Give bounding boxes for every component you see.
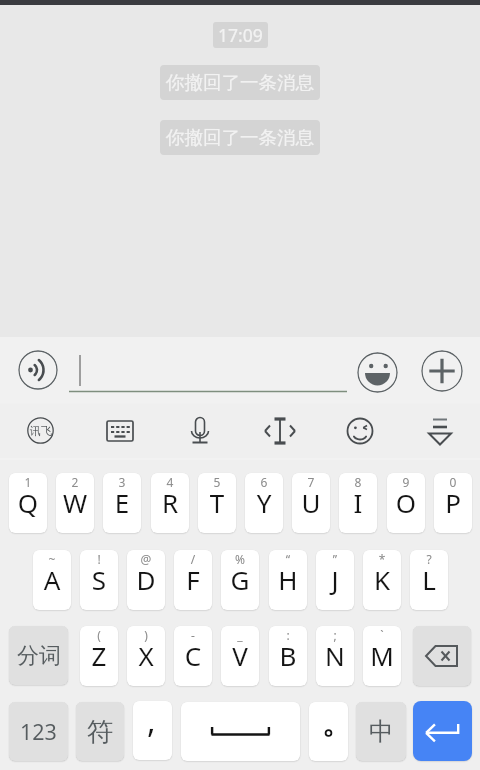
button[interactable]: ! — [80, 550, 118, 610]
staticText: S — [80, 562, 118, 597]
button[interactable]: 1 — [9, 473, 47, 533]
staticText: * — [363, 551, 401, 567]
staticText: ( — [80, 627, 118, 643]
staticText: 7 — [292, 474, 330, 490]
staticText: 3 — [103, 474, 141, 490]
staticText: 17:09 — [218, 23, 263, 47]
staticText: Q — [9, 485, 47, 520]
staticText: P — [434, 485, 472, 520]
button[interactable]: ” — [316, 550, 354, 610]
staticText: 8 — [339, 474, 377, 490]
staticText: ; — [316, 627, 354, 643]
button[interactable]: Emoticons — [320, 402, 400, 459]
staticText: H — [269, 562, 307, 597]
staticText: R — [151, 485, 189, 520]
button[interactable]: _ — [221, 626, 259, 686]
staticText: T — [198, 485, 236, 520]
staticText: G — [221, 562, 259, 597]
staticText: % — [221, 551, 259, 567]
staticText: 0 — [434, 474, 472, 490]
button[interactable]: - — [174, 626, 212, 686]
button[interactable]: 分词 — [9, 626, 68, 685]
button[interactable]: 9 — [387, 473, 425, 533]
staticText: M — [363, 638, 401, 673]
button[interactable]: ~ — [33, 550, 71, 610]
staticText: 你撤回了一条消息 — [166, 71, 314, 94]
staticText: 6 — [245, 474, 283, 490]
staticText: ` — [363, 627, 401, 643]
staticText: 1 — [9, 474, 47, 490]
button[interactable]: Move cursor — [240, 402, 320, 459]
staticText: E — [103, 485, 141, 520]
staticText: I — [339, 485, 377, 520]
staticText: ? — [410, 551, 448, 567]
button[interactable]: * — [363, 550, 401, 610]
button[interactable]: 中 — [356, 702, 406, 761]
staticText: 2 — [56, 474, 94, 490]
staticText: Y — [245, 485, 283, 520]
staticText: , — [147, 701, 156, 743]
button[interactable]: 2 — [56, 473, 94, 533]
button[interactable]: @ — [127, 550, 165, 610]
staticText: J — [316, 562, 354, 597]
button[interactable]: / — [174, 550, 212, 610]
button[interactable]: “ — [269, 550, 307, 610]
staticText: 符 — [87, 715, 114, 748]
staticText: ! — [80, 551, 118, 567]
button[interactable]: 3 — [103, 473, 141, 533]
button[interactable]: ) — [127, 626, 165, 686]
button[interactable]: ; — [316, 626, 354, 686]
staticText: ) — [127, 627, 165, 643]
button[interactable]: 7 — [292, 473, 330, 533]
staticText: F — [174, 562, 212, 597]
staticText: 中 — [369, 716, 394, 747]
button[interactable]: 5 — [198, 473, 236, 533]
staticText: L — [410, 562, 448, 597]
staticText: 9 — [387, 474, 425, 490]
button[interactable]: 0 — [434, 473, 472, 533]
staticText: 分词 — [17, 642, 61, 670]
staticText: / — [174, 551, 212, 567]
button[interactable]: ( — [80, 626, 118, 686]
button[interactable]: Voice input — [160, 402, 240, 459]
staticText: ” — [316, 551, 354, 567]
button[interactable]: Backspace — [413, 626, 471, 686]
staticText: D — [127, 562, 165, 597]
staticText: C — [174, 638, 212, 673]
button[interactable]: Emoji — [357, 352, 398, 393]
button[interactable]: More options — [421, 350, 463, 392]
button[interactable]: ` — [363, 626, 401, 686]
staticText: 讯飞 — [30, 424, 52, 438]
staticText: 4 — [151, 474, 189, 490]
button[interactable]: Keyboard layout — [80, 402, 160, 459]
staticText: - — [174, 627, 212, 643]
button[interactable]: 4 — [151, 473, 189, 533]
button[interactable]: ? — [410, 550, 448, 610]
button[interactable]: 123 — [9, 702, 68, 761]
staticText: K — [363, 562, 401, 597]
staticText: “ — [269, 551, 307, 567]
button[interactable]: Enter — [413, 701, 472, 761]
staticText: ~ — [33, 551, 71, 567]
staticText: 你撤回了一条消息 — [166, 126, 314, 149]
staticText: N — [316, 638, 354, 673]
staticText: 5 — [198, 474, 236, 490]
button[interactable]: : — [269, 626, 307, 686]
button[interactable]: Hide keyboard — [400, 402, 480, 459]
button[interactable]: , — [133, 701, 172, 760]
staticText: A — [33, 562, 71, 597]
button[interactable]: 8 — [339, 473, 377, 533]
button[interactable]: 6 — [245, 473, 283, 533]
staticText: Z — [80, 638, 118, 673]
staticText: V — [221, 638, 259, 673]
button[interactable]: % — [221, 550, 259, 610]
staticText: O — [387, 485, 425, 520]
staticText: : — [269, 627, 307, 643]
staticText: W — [56, 485, 94, 520]
button[interactable]: Voice input — [18, 350, 58, 390]
button[interactable]: 符 — [76, 702, 124, 761]
button[interactable]: Period — [309, 702, 348, 761]
button[interactable]: Space — [181, 702, 300, 761]
button[interactable]: Input method — [0, 402, 80, 459]
staticText: @ — [127, 551, 165, 567]
